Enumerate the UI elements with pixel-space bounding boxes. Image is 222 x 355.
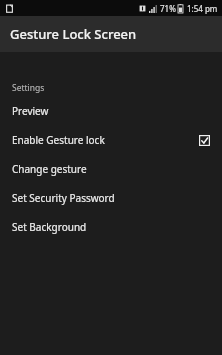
staticText: Settings [12, 82, 45, 94]
other: Enable Gesture lock checkbox [199, 135, 210, 146]
button[interactable]: Set Background [0, 218, 222, 236]
button[interactable]: Preview [0, 102, 222, 120]
button[interactable]: Change gesture [0, 160, 222, 178]
staticText: 71% [160, 3, 176, 14]
staticText: Change gesture [12, 162, 87, 176]
staticText: Gesture Lock Screen [10, 25, 137, 43]
button[interactable]: Enable Gesture lock [0, 131, 222, 149]
staticText: 1:54 pm [187, 3, 218, 14]
staticText: Set Background [12, 220, 87, 234]
staticText: Set Security Password [12, 191, 115, 205]
staticText: Preview [12, 104, 49, 118]
button[interactable]: Set Security Password [0, 189, 222, 207]
staticText: Enable Gesture lock [12, 133, 105, 147]
